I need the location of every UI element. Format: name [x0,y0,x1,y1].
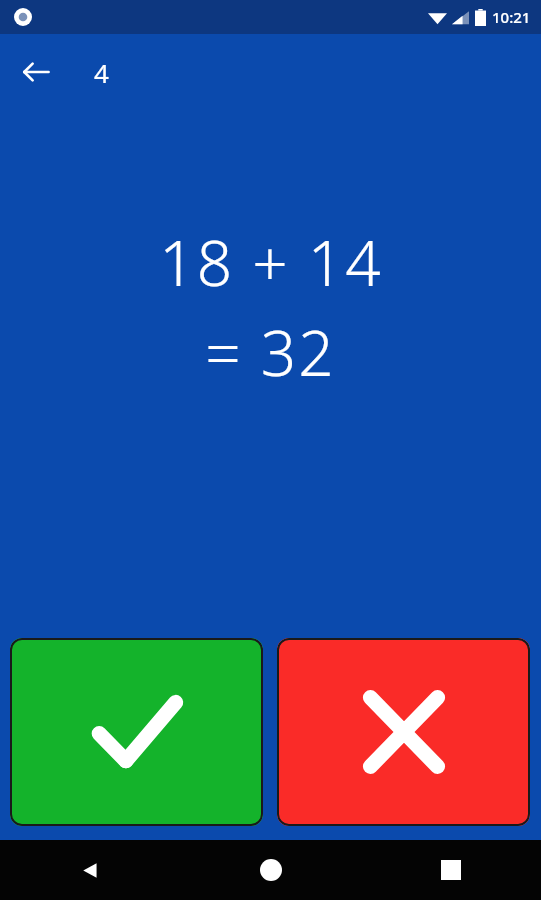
button[interactable]: Correct [10,638,263,826]
staticText: 18 + 14 [159,220,383,304]
button[interactable]: Back [10,46,62,98]
button[interactable]: Back [0,840,181,900]
staticText: 4 [94,55,109,90]
button[interactable]: Recent apps [361,840,541,900]
staticText: = 32 [205,310,336,394]
button[interactable]: Home [181,840,361,900]
button[interactable]: Wrong [277,638,530,826]
staticText: 10:21 [492,7,531,27]
